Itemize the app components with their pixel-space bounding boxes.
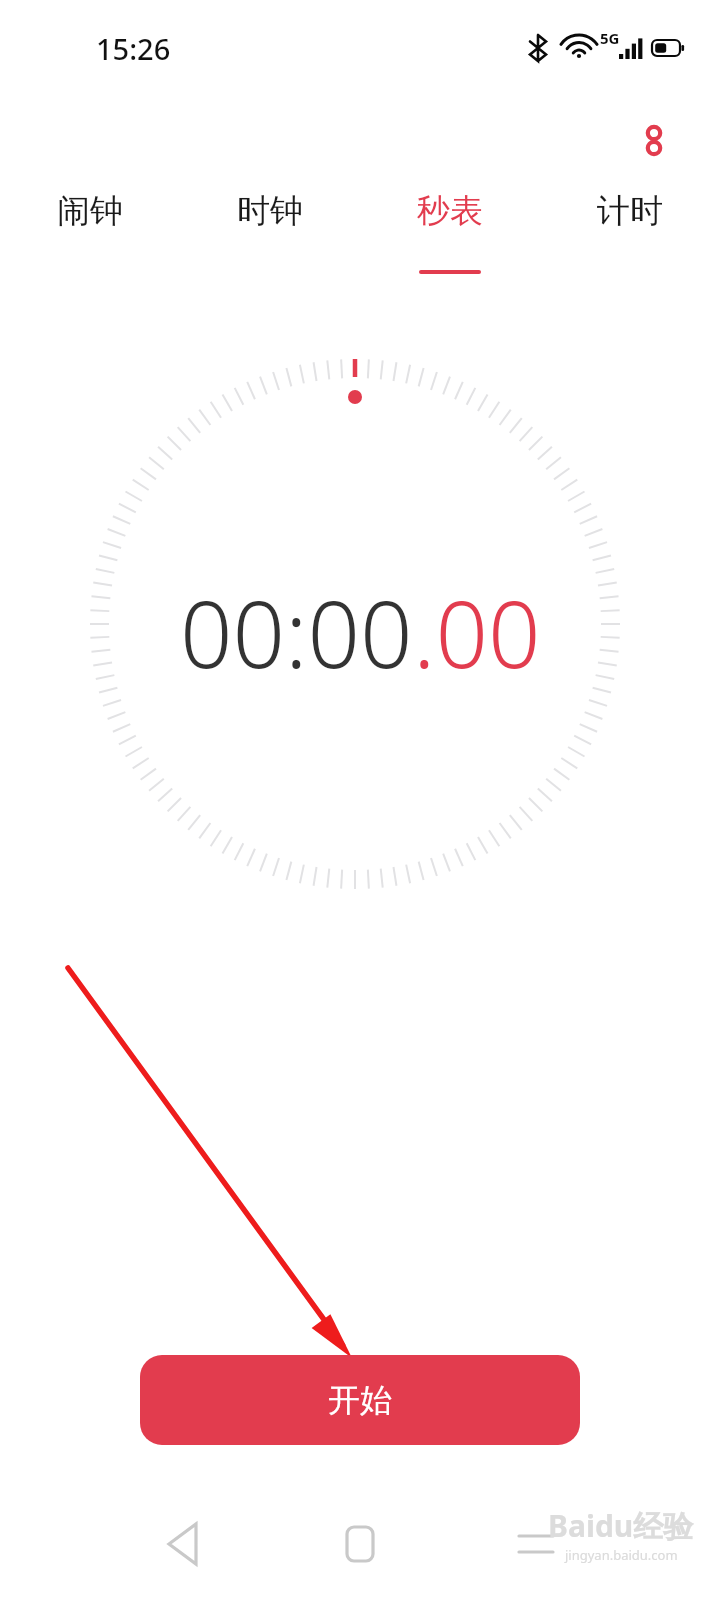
staticText: 00:00 <box>180 570 413 690</box>
button[interactable]: More options <box>618 98 690 170</box>
button[interactable]: Home <box>316 1500 404 1588</box>
button[interactable]: Back <box>140 1500 228 1588</box>
staticText: 闹钟 <box>57 190 123 232</box>
staticText: .00 <box>413 570 541 690</box>
button[interactable]: 时钟 <box>180 190 360 290</box>
staticText: 秒表 <box>417 190 483 232</box>
button[interactable]: 闹钟 <box>0 190 180 290</box>
staticText: 开始 <box>328 1380 392 1420</box>
staticText: 计时 <box>597 190 663 232</box>
button[interactable]: 秒表 <box>360 190 540 290</box>
staticText: 时钟 <box>237 190 303 232</box>
staticText: 5G <box>600 28 620 48</box>
staticText: Baidu经验 <box>548 1505 694 1546</box>
button[interactable]: 开始 <box>140 1355 580 1445</box>
button[interactable]: Recent apps <box>492 1500 580 1588</box>
button[interactable]: 计时 <box>540 190 720 290</box>
staticText: 15:26 <box>96 29 171 68</box>
staticText: jingyan.baidu.com <box>565 1546 678 1564</box>
